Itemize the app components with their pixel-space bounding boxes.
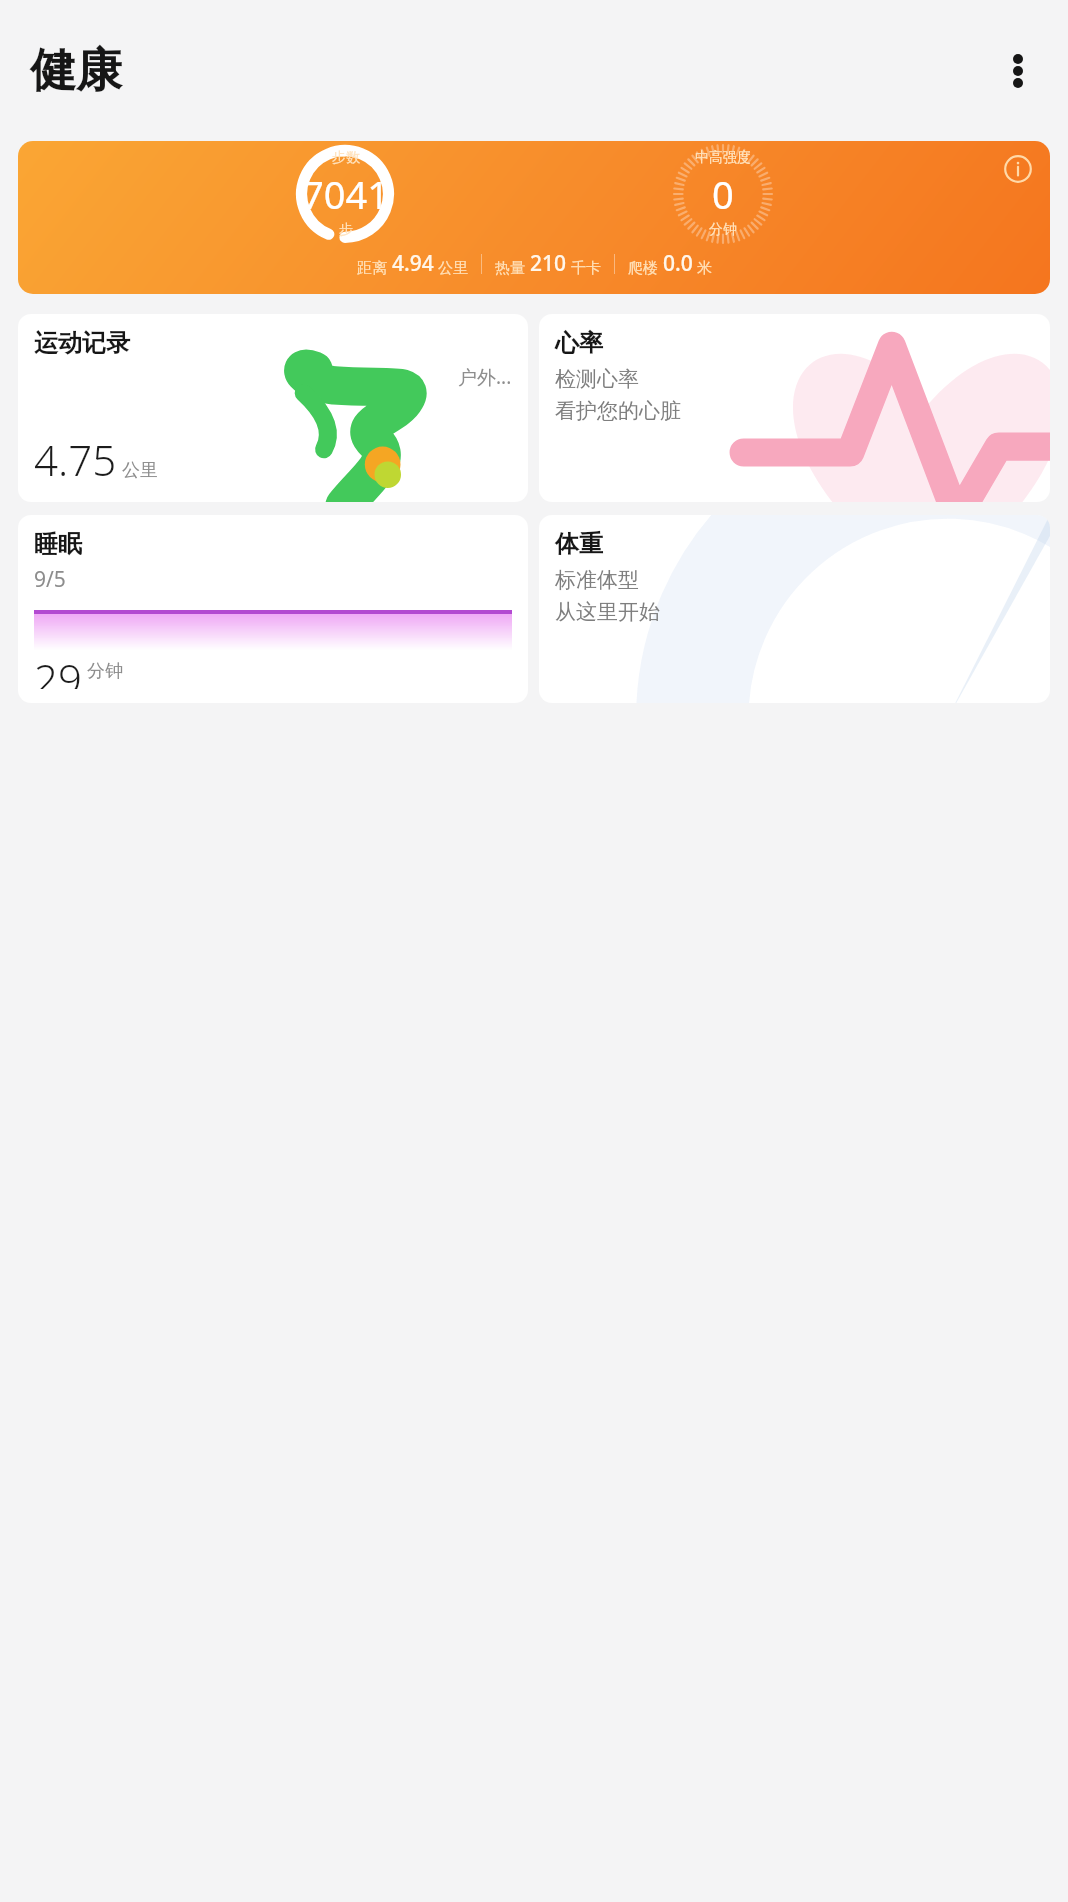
staticText: 210 (530, 249, 567, 278)
staticText: 步数 (332, 149, 360, 167)
staticText: 0.0 (663, 249, 693, 278)
button[interactable]: More options (988, 41, 1048, 101)
staticText: 检测心率 看护您的心脏 (555, 366, 681, 424)
staticText: 标准体型 从这里开始 (555, 567, 660, 625)
staticText: 热量 (495, 259, 525, 278)
staticText: 健康 (30, 42, 122, 100)
staticText: 心率 (555, 328, 603, 358)
staticText: 分钟 (709, 221, 737, 239)
staticText: 9/5 (34, 565, 66, 594)
staticText: 爬楼 (628, 259, 658, 278)
button[interactable]: 心率 (539, 314, 1050, 502)
button[interactable]: 睡眠 (18, 515, 528, 703)
staticText: 距离 (357, 259, 387, 278)
staticText: 公里 (438, 259, 468, 278)
button[interactable]: 运动记录 (18, 314, 528, 502)
staticText: 睡眠 (34, 529, 82, 559)
staticText: 户外... (458, 364, 512, 390)
staticText: 29 (34, 650, 82, 689)
button[interactable]: Info (18, 141, 1050, 294)
staticText: 步 (339, 221, 353, 239)
staticText: 0 (712, 168, 734, 220)
staticText: 公里 (122, 459, 158, 482)
staticText: 4.94 (392, 249, 434, 278)
staticText: 7041 (302, 168, 389, 220)
staticText: 千卡 (571, 259, 601, 278)
staticText: 4.75 (34, 431, 117, 488)
staticText: 体重 (555, 529, 603, 559)
staticText: 米 (697, 259, 712, 278)
staticText: 分钟 (87, 660, 123, 683)
button[interactable]: Info (997, 148, 1039, 190)
staticText: 运动记录 (34, 328, 130, 358)
staticText: 中高强度 (695, 149, 751, 167)
button[interactable]: 体重 (539, 515, 1050, 703)
